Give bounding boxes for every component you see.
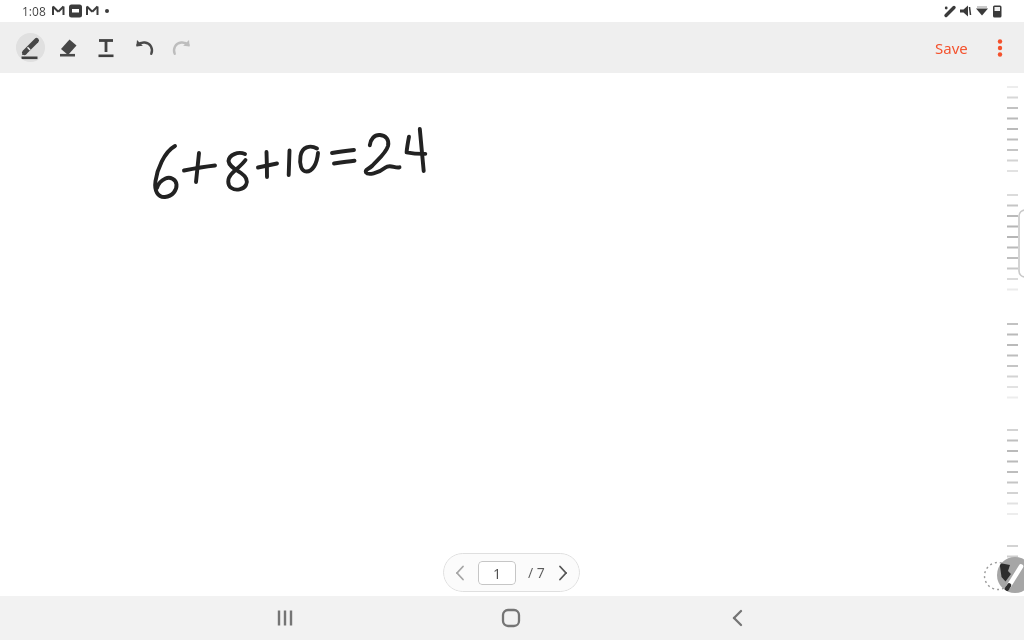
button[interactable] bbox=[125, 29, 163, 67]
staticText: Save bbox=[935, 38, 968, 58]
button[interactable] bbox=[988, 36, 1012, 60]
button[interactable] bbox=[263, 596, 307, 640]
button[interactable] bbox=[163, 29, 201, 67]
button[interactable]: Save bbox=[929, 30, 974, 66]
button[interactable]: 1 bbox=[443, 553, 580, 592]
staticText: 1:08 bbox=[22, 3, 46, 19]
button[interactable] bbox=[997, 557, 1024, 593]
button[interactable] bbox=[49, 29, 87, 67]
button[interactable] bbox=[87, 29, 125, 67]
button[interactable] bbox=[489, 596, 533, 640]
button[interactable] bbox=[715, 596, 759, 640]
button[interactable] bbox=[16, 33, 45, 62]
staticText: / 7 bbox=[528, 563, 545, 582]
staticText: 1 bbox=[493, 564, 502, 583]
